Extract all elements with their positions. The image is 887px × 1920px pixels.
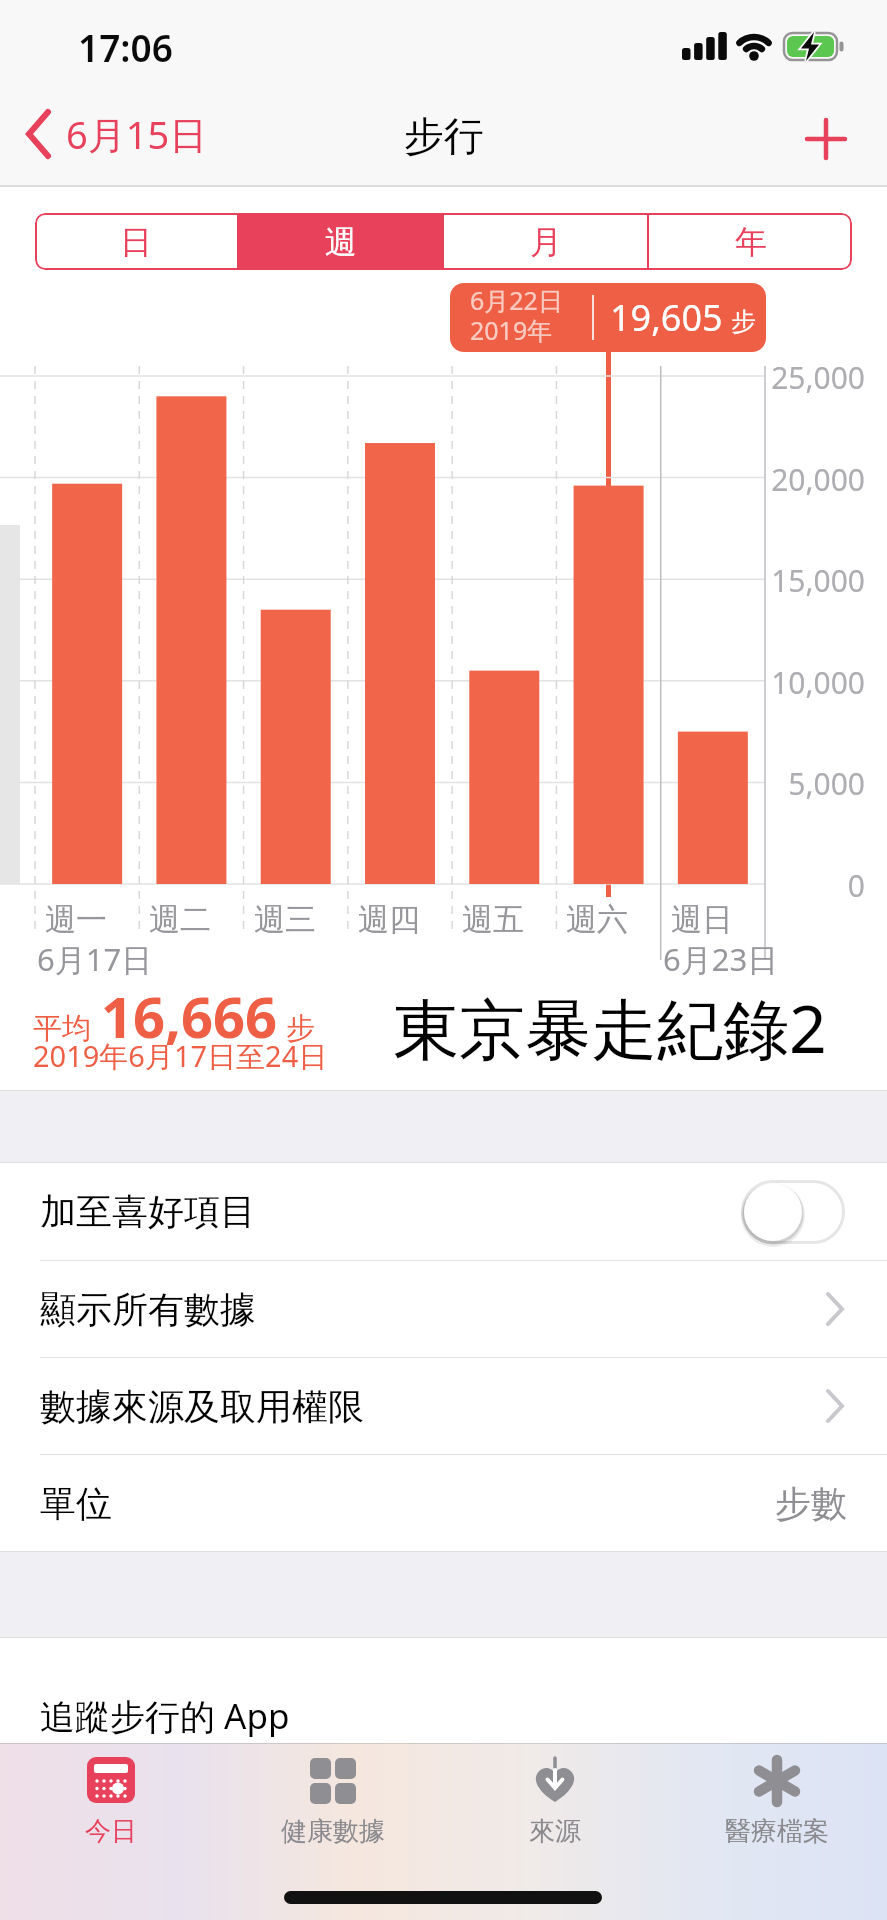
staticText: 步	[286, 1010, 315, 1047]
staticText: 醫療檔案	[725, 1815, 829, 1848]
staticText: 5,000	[770, 763, 865, 804]
staticText: 20,000	[770, 459, 865, 500]
staticText: 追蹤步行的 App	[40, 1692, 290, 1740]
button[interactable]	[806, 119, 846, 159]
staticText: 週四	[358, 900, 420, 939]
staticText: 東京暴走紀錄2	[393, 982, 827, 1072]
button[interactable]: 加至喜好項目	[0, 1163, 887, 1260]
staticText: 6月17日	[37, 938, 153, 980]
button[interactable]: 月	[444, 213, 647, 270]
button[interactable]: 顯示所有數據	[0, 1261, 887, 1357]
staticText: 2019年6月17日至24日	[33, 1036, 328, 1076]
staticText: 2019年	[470, 313, 553, 347]
button[interactable]: 單位	[0, 1455, 887, 1551]
staticText: 年	[735, 222, 767, 262]
staticText: 日	[120, 222, 152, 262]
button[interactable]: 6月15日	[24, 108, 208, 160]
staticText: 步數	[775, 1481, 847, 1526]
staticText: 單位	[40, 1481, 112, 1526]
staticText: 步	[731, 306, 756, 337]
staticText: 6月15日	[66, 108, 208, 160]
button[interactable]: 健康數據	[222, 1743, 444, 1873]
staticText: 15,000	[770, 560, 865, 601]
staticText: 加至喜好項目	[40, 1189, 256, 1234]
button[interactable]: 數據來源及取用權限	[0, 1358, 887, 1454]
staticText: 健康數據	[281, 1815, 385, 1848]
staticText: 6月23日	[663, 938, 779, 980]
staticText: 0	[770, 865, 865, 906]
button[interactable]: 醫療檔案	[666, 1743, 887, 1873]
staticText: 週六	[566, 900, 628, 939]
staticText: 週	[325, 222, 357, 262]
staticText: 週日	[671, 900, 733, 939]
button[interactable]: 來源	[444, 1743, 666, 1873]
button[interactable]: 今日	[0, 1743, 222, 1873]
staticText: 6月22日	[470, 283, 563, 317]
staticText: 來源	[529, 1815, 581, 1848]
staticText: 10,000	[770, 662, 865, 703]
staticText: 步行	[404, 111, 484, 161]
staticText: 週三	[254, 900, 316, 939]
staticText: 平均	[33, 1010, 91, 1047]
staticText: 月	[530, 222, 562, 262]
button[interactable]: 年	[649, 213, 852, 270]
staticText: 顯示所有數據	[40, 1287, 256, 1332]
staticText: 數據來源及取用權限	[40, 1384, 364, 1429]
staticText: 週一	[45, 900, 107, 939]
button[interactable]: 週	[239, 213, 442, 270]
staticText: 今日	[85, 1815, 137, 1848]
staticText: 19,605	[610, 293, 723, 342]
staticText: 25,000	[770, 357, 865, 398]
staticText: 17:06	[78, 22, 173, 72]
staticText: 16,666	[101, 978, 278, 1054]
staticText: 週二	[149, 900, 211, 939]
button[interactable]: 日	[35, 213, 237, 270]
staticText: 週五	[462, 900, 524, 939]
